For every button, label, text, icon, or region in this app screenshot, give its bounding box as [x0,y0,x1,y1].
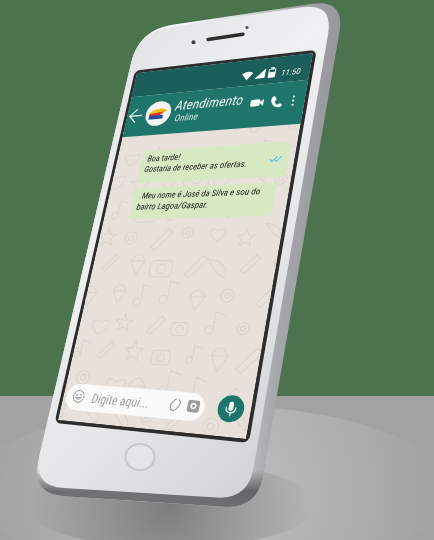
button[interactable]: WhatsApp chat screen on a phone [0,0,434,540]
